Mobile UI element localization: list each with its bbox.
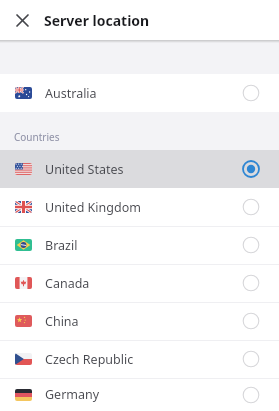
staticText: Australia [45,85,97,102]
staticText: Germany [45,386,100,403]
button[interactable]: Brazil [0,226,279,264]
staticText: Countries [14,130,60,144]
staticText: Server location [44,11,150,30]
button[interactable] [0,0,44,40]
staticText: Brazil [45,237,78,254]
button[interactable]: Australia [0,74,279,112]
button[interactable]: Germany [0,378,279,411]
staticText: United Kingdom [45,199,141,216]
button[interactable]: Czech Republic [0,340,279,378]
staticText: Czech Republic [45,351,134,368]
button[interactable]: Canada [0,264,279,302]
button[interactable]: China [0,302,279,340]
staticText: China [45,313,79,330]
staticText: United States [45,161,124,178]
button[interactable]: United States [0,150,279,188]
button[interactable]: United Kingdom [0,188,279,226]
staticText: Canada [45,275,90,292]
